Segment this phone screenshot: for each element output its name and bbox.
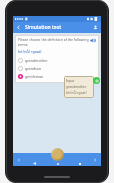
staticText: gentleman bbox=[25, 74, 44, 79]
button[interactable]: hè (nǚ) rgoat) bbox=[18, 49, 42, 54]
staticText: Simulation test bbox=[25, 24, 62, 31]
staticText: grandmother bbox=[25, 58, 48, 63]
button[interactable]: Input explanation bbox=[64, 78, 94, 84]
button[interactable]: Next bbox=[89, 154, 101, 166]
button[interactable]: gentleman bbox=[18, 74, 96, 79]
staticText: hè (nǚ) rgoat) bbox=[66, 91, 87, 95]
staticText: Input explanation bbox=[66, 79, 92, 83]
button[interactable]: Record bbox=[51, 148, 64, 161]
button[interactable]: Account bbox=[90, 22, 101, 33]
button[interactable]: grandmother bbox=[64, 84, 94, 90]
button[interactable]: Back bbox=[13, 22, 24, 33]
button[interactable]: grandson bbox=[18, 66, 96, 71]
button[interactable]: Play audio bbox=[89, 37, 96, 44]
button[interactable]: hè (nǚ) rgoat) bbox=[64, 90, 94, 96]
button[interactable]: Previous bbox=[13, 154, 25, 166]
staticText: grandson bbox=[25, 66, 42, 71]
staticText: grandmother bbox=[66, 85, 87, 89]
button[interactable]: Add bbox=[93, 77, 100, 84]
staticText: Please choose the definition of the foll… bbox=[18, 37, 89, 47]
button[interactable]: grandmother bbox=[18, 58, 96, 63]
